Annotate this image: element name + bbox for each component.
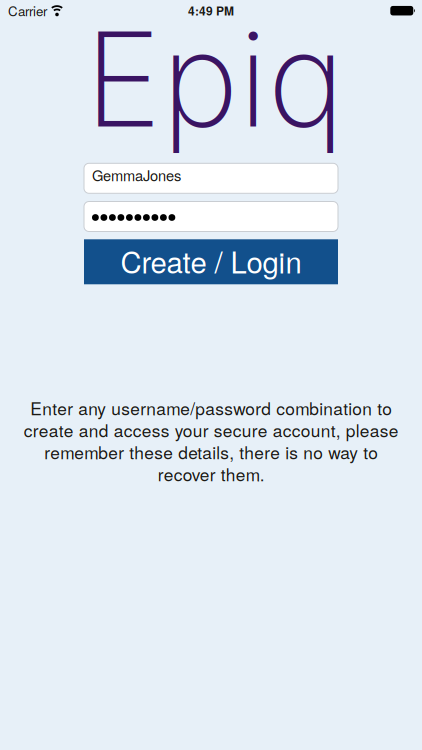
staticText: Enter any username/password combination … [23,396,398,486]
staticText: GemmaJones [92,165,181,185]
button[interactable]: Create / Login [84,239,338,284]
staticText: Epiq [84,0,344,158]
button[interactable]: Password [84,201,338,231]
staticText: 4:49 PM [188,2,234,19]
staticText: Create / Login [120,240,301,281]
staticText: Carrier [8,1,47,20]
button[interactable]: GemmaJones [84,163,338,193]
